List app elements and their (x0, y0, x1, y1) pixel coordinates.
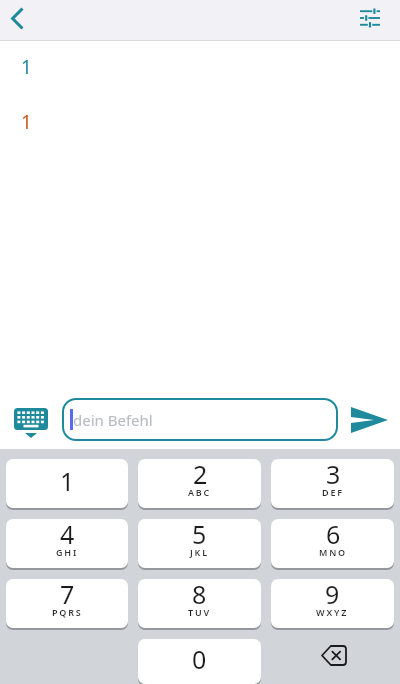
staticText: 2 (193, 459, 208, 491)
staticText: 7 (60, 579, 75, 611)
button[interactable] (338, 390, 400, 449)
staticText: GHI (56, 546, 79, 558)
button[interactable] (0, 0, 33, 40)
button[interactable] (0, 390, 62, 449)
staticText: 6 (326, 519, 341, 551)
staticText: 8 (192, 579, 207, 611)
button[interactable]: 6 (271, 519, 394, 570)
staticText: TUV (188, 606, 211, 618)
staticText: 1 (60, 464, 75, 498)
button[interactable]: 0 (138, 639, 261, 684)
staticText: 1 (21, 109, 32, 135)
button[interactable]: 2 (138, 459, 261, 510)
staticText: ABC (188, 486, 212, 498)
staticText: PQRS (52, 606, 83, 618)
button[interactable]: 3 (271, 459, 394, 510)
staticText: DEF (322, 486, 344, 498)
staticText: 0 (192, 642, 207, 676)
button[interactable] (271, 639, 394, 684)
button[interactable]: 4 (6, 519, 128, 570)
staticText: MNO (319, 546, 347, 558)
staticText: 9 (325, 579, 340, 611)
button[interactable]: 1 (6, 459, 128, 510)
staticText: WXYZ (316, 606, 349, 618)
staticText: dein Befehl (73, 410, 153, 430)
button[interactable]: dein Befehl (62, 398, 338, 441)
button[interactable]: 8 (138, 579, 261, 630)
staticText: 3 (326, 459, 341, 491)
staticText: 5 (192, 519, 207, 551)
button[interactable]: 7 (6, 579, 128, 630)
button[interactable]: 5 (138, 519, 261, 570)
button[interactable] (352, 0, 388, 40)
staticText: 4 (60, 519, 75, 551)
button[interactable]: 9 (271, 579, 394, 630)
staticText: 1 (21, 54, 32, 80)
staticText: JKL (190, 546, 209, 558)
